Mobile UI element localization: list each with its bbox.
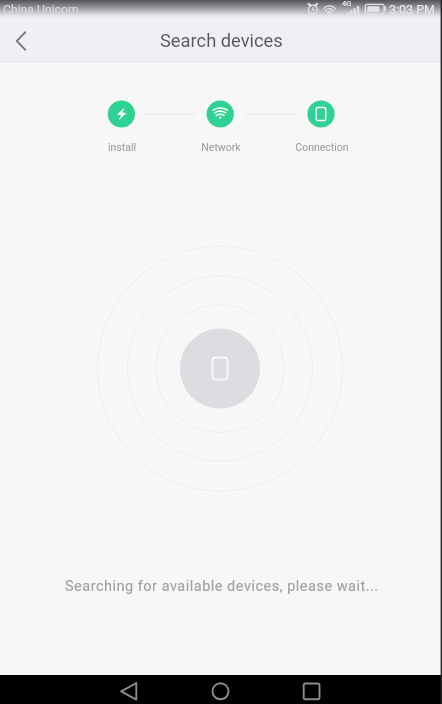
staticText: Connection (262, 141, 382, 153)
staticText: Searching for available devices, please … (65, 578, 379, 595)
staticText: 4G (342, 0, 352, 8)
button[interactable]: Home (198, 675, 244, 704)
staticText: Network (161, 141, 281, 153)
button[interactable]: Back (0, 20, 42, 62)
button[interactable]: Recent apps (289, 675, 335, 704)
staticText: Search devices (160, 30, 283, 51)
staticText: China Unicom (3, 3, 79, 17)
staticText: install (62, 141, 182, 153)
button[interactable]: Back (106, 675, 152, 704)
staticText: 3:03 PM (389, 2, 436, 17)
